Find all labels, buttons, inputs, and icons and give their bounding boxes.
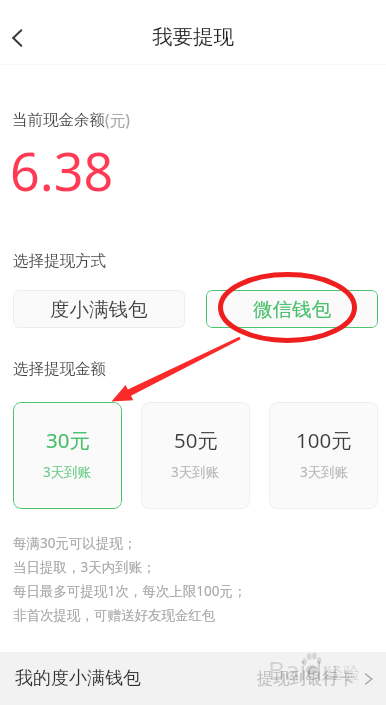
staticText: 每日最多可提现1次，每次上限100元； xyxy=(13,582,247,600)
button[interactable]: 我的度小满钱包 xyxy=(15,667,141,690)
staticText: 100元 xyxy=(296,426,352,454)
staticText: 当前现金余额 xyxy=(12,110,105,130)
button[interactable]: 度小满钱包 xyxy=(13,290,185,328)
button[interactable]: 30元 xyxy=(13,402,122,509)
staticText: 提现到银行卡 xyxy=(257,668,355,689)
staticText: 选择提现方式 xyxy=(13,251,106,271)
staticText: 3天到账 xyxy=(171,463,220,481)
staticText: 度小满钱包 xyxy=(50,297,148,322)
staticText: 30元 xyxy=(46,426,90,454)
staticText: 3天到账 xyxy=(43,463,92,481)
staticText: 当日提取，3天内到账； xyxy=(13,558,156,576)
staticText: 微信钱包 xyxy=(253,297,331,322)
staticText: 选择提现金额 xyxy=(13,359,106,379)
staticText: 我的度小满钱包 xyxy=(15,667,141,690)
staticText: 经验 xyxy=(326,663,360,684)
staticText: (元) xyxy=(105,109,130,130)
staticText: 6.38 xyxy=(10,135,114,206)
button[interactable]: 微信钱包 xyxy=(206,290,378,328)
button[interactable]: Back xyxy=(0,16,44,60)
button[interactable]: 提现到银行卡 xyxy=(257,668,373,689)
staticText: 3天到账 xyxy=(300,463,349,481)
staticText: 我要提现 xyxy=(152,24,234,50)
button[interactable]: 100元 xyxy=(269,402,378,509)
staticText: 非首次提现，可赠送好友现金红包 xyxy=(13,607,216,624)
staticText: Baidu xyxy=(268,652,339,687)
button[interactable]: 50元 xyxy=(141,402,250,509)
staticText: 每满30元可以提现； xyxy=(13,534,137,552)
staticText: 50元 xyxy=(174,426,218,454)
